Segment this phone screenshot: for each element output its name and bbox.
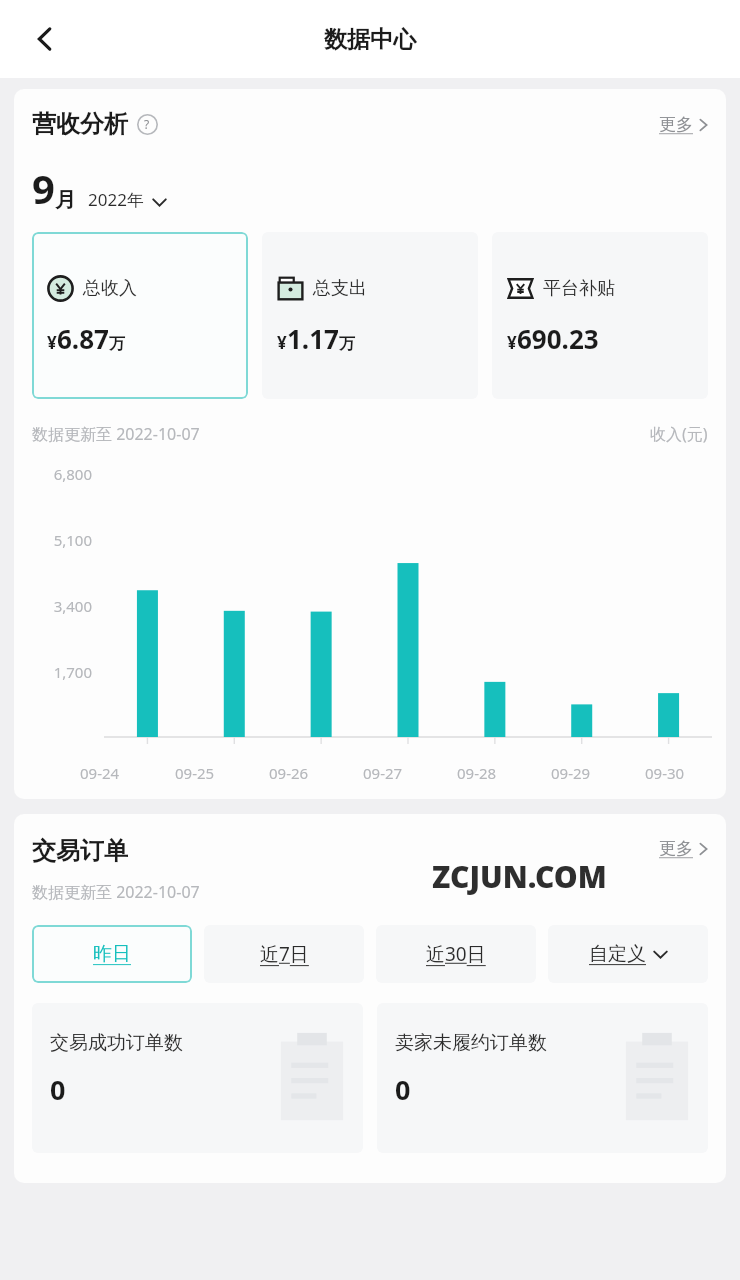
staticText: 09-27: [363, 763, 403, 783]
staticText: 卖家未履约订单数: [395, 1031, 547, 1055]
staticText: 万: [109, 334, 125, 354]
button[interactable]: 交易成功订单数: [32, 1003, 363, 1153]
staticText: 1.17: [287, 321, 339, 356]
staticText: 平台补贴: [543, 277, 615, 300]
staticText: 月: [55, 187, 76, 213]
button[interactable]: 平台补贴: [492, 232, 708, 399]
staticText: 交易订单: [32, 836, 128, 866]
button[interactable]: 卖家未履约订单数: [377, 1003, 708, 1153]
button[interactable]: Back: [18, 12, 72, 66]
button[interactable]: Help: [136, 113, 158, 135]
staticText: 690.23: [517, 321, 599, 356]
button[interactable]: 总支出: [262, 232, 478, 399]
staticText: 更多: [659, 114, 693, 135]
staticText: 5,100: [26, 530, 92, 550]
staticText: 09-29: [551, 763, 591, 783]
staticText: 09-30: [645, 763, 685, 783]
staticText: 昨日: [93, 942, 131, 966]
staticText: 3,400: [26, 596, 92, 616]
button[interactable]: 近30日: [376, 925, 536, 983]
staticText: 总收入: [83, 277, 137, 300]
staticText: 09-25: [175, 763, 215, 783]
staticText: 数据中心: [324, 25, 416, 54]
staticText: 0: [50, 1071, 66, 1108]
staticText: 近30日: [426, 941, 486, 967]
staticText: 9: [32, 161, 55, 215]
staticText: 交易成功订单数: [50, 1031, 183, 1055]
button[interactable]: 更多: [659, 114, 708, 135]
button[interactable]: 近7日: [204, 925, 364, 983]
staticText: 万: [339, 334, 355, 354]
staticText: ¥: [47, 331, 57, 354]
staticText: 09-26: [269, 763, 309, 783]
staticText: 自定义: [589, 942, 646, 966]
staticText: 数据更新至 2022-10-07: [32, 423, 200, 445]
staticText: 2022年: [88, 188, 144, 211]
staticText: ¥: [277, 331, 287, 354]
staticText: 1,700: [26, 662, 92, 682]
staticText: 更多: [659, 838, 693, 859]
staticText: 营收分析: [32, 109, 128, 139]
staticText: ¥: [507, 331, 517, 354]
button[interactable]: 9: [32, 161, 167, 215]
button[interactable]: 总收入: [32, 232, 248, 399]
staticText: 收入(元): [650, 423, 708, 445]
staticText: 数据更新至 2022-10-07: [32, 881, 200, 903]
staticText: 总支出: [313, 277, 367, 300]
staticText: 09-28: [457, 763, 497, 783]
staticText: 09-24: [80, 763, 120, 783]
staticText: 6,800: [26, 464, 92, 484]
staticText: 近7日: [260, 941, 309, 967]
button[interactable]: 更多: [659, 838, 708, 859]
button[interactable]: 自定义: [548, 925, 708, 983]
staticText: ?: [144, 116, 150, 132]
staticText: 6.87: [57, 321, 109, 356]
staticText: ZCJUN.COM: [432, 856, 607, 897]
button[interactable]: 昨日: [32, 925, 192, 983]
staticText: 0: [395, 1071, 411, 1108]
